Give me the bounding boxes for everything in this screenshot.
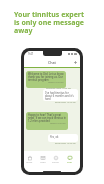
- button[interactable]: Welcome to Oto! Let us know thank you fo…: [26, 71, 66, 88]
- staticText: Learn: [40, 161, 46, 164]
- staticText: Welcome to Oto! Let us know thank you fo…: [28, 72, 64, 81]
- other: Sound: [54, 156, 58, 160]
- staticText: I've had tinnitus for about 6 months and…: [45, 91, 76, 100]
- staticText: Yes, ok: [50, 135, 59, 139]
- staticText: Chat: [67, 161, 72, 164]
- button[interactable]: I've had tinnitus for about 6 months and…: [43, 89, 78, 101]
- button[interactable]: Home: [25, 156, 34, 164]
- staticText: Your tinnitus expert is only one message…: [14, 10, 86, 35]
- staticText: Read today 10:43 am: [55, 101, 76, 104]
- button[interactable]: Happy to hear! That's great news, if we …: [26, 112, 68, 130]
- button[interactable]: Chat: [65, 156, 74, 164]
- other: Learn: [41, 156, 45, 160]
- other: New message: [74, 61, 77, 64]
- staticText: 9:41: [28, 52, 34, 56]
- staticText: Read today 10:46 am: [55, 142, 76, 145]
- staticText: Today 10:42 am: [48, 81, 64, 84]
- staticText: Today 10:45 am: [50, 122, 66, 125]
- staticText: Delivered today 10:42 am: [46, 87, 71, 90]
- staticText: Chat: [48, 60, 56, 65]
- staticText: Sound: [52, 161, 59, 164]
- button[interactable]: Learn: [38, 156, 47, 164]
- other: Chat: [68, 156, 72, 160]
- staticText: Happy to hear! That's great news, if we …: [28, 113, 66, 122]
- other: Home: [28, 156, 32, 160]
- staticText: Home: [26, 161, 33, 164]
- button[interactable]: Yes, ok: [48, 134, 78, 142]
- button[interactable]: Sound: [51, 156, 60, 164]
